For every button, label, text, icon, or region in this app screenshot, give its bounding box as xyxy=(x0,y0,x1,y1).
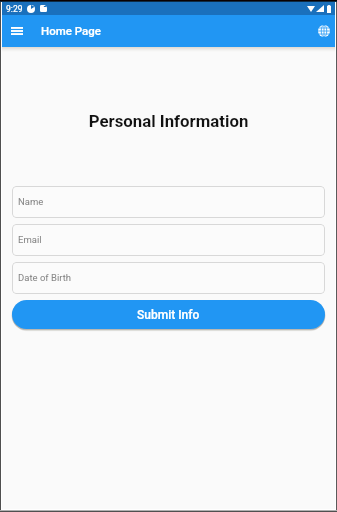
button[interactable]: Email xyxy=(12,224,325,256)
button[interactable]: Name xyxy=(12,186,325,218)
staticText: Submit Info xyxy=(137,308,200,322)
button[interactable]: Date of Birth xyxy=(12,262,325,294)
staticText: 9:29 xyxy=(6,4,23,14)
staticText: Home Page xyxy=(41,24,101,37)
button[interactable]: Submit Info xyxy=(12,300,325,329)
staticText: Personal Information xyxy=(2,111,335,131)
staticText: Date of Birth xyxy=(18,272,72,283)
button[interactable]: Language xyxy=(313,20,335,42)
staticText: Email xyxy=(18,234,42,245)
button[interactable]: Menu xyxy=(5,19,29,43)
staticText: Name xyxy=(18,196,44,207)
